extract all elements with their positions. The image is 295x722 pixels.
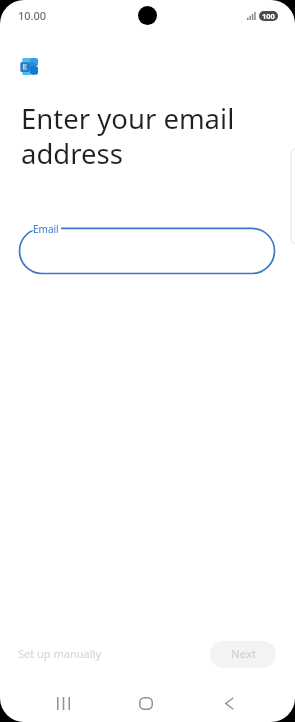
staticText: 100 [262,11,275,21]
staticText: 10.00 [18,8,47,23]
button[interactable]: Set up manually [10,640,110,667]
staticText: Enter your email address [21,100,235,172]
button[interactable]: Email [20,228,275,273]
staticText: Set up manually [18,646,102,661]
button[interactable]: Back [209,683,249,722]
button[interactable]: Recent apps [43,683,83,722]
button[interactable]: Next [210,641,276,668]
staticText: Email [33,222,59,236]
staticText: Next [231,646,257,662]
button[interactable]: Home [126,683,166,722]
